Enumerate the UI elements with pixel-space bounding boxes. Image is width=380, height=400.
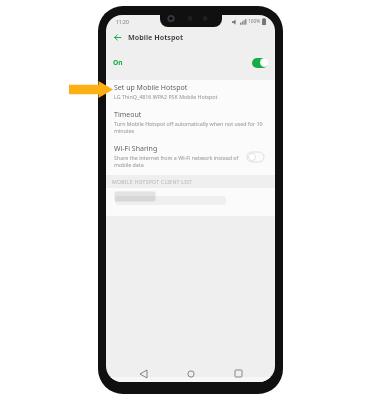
staticText: Timeout [114, 110, 142, 120]
staticText: 11:20 [116, 19, 129, 26]
staticText: MOBILE HOTSPOT CLIENT LIST [112, 178, 193, 185]
button[interactable]: Wi-Fi Sharing [106, 141, 275, 172]
button[interactable]: Timeout [106, 107, 275, 138]
staticText: Share the internet from a Wi-Fi network … [114, 154, 242, 169]
button[interactable]: Home [181, 364, 201, 382]
staticText: Wi-Fi Sharing [114, 144, 158, 154]
button[interactable]: On [106, 50, 275, 74]
staticText: Turn Mobile Hotspot off automatically wh… [114, 120, 265, 135]
staticText: Mobile Hotspot [128, 32, 184, 42]
staticText: 100% [248, 18, 261, 25]
staticText: On [113, 58, 123, 67]
button[interactable]: Back [133, 364, 153, 382]
button[interactable]: Back [111, 31, 124, 44]
button[interactable]: Recent apps [228, 364, 248, 382]
staticText: Set up Mobile Hotspot [114, 83, 188, 93]
staticText: LG ThinQ_4816 WPA2 PSK Mobile Hotspot [114, 93, 218, 100]
button[interactable]: Set up Mobile Hotspot [106, 80, 275, 103]
